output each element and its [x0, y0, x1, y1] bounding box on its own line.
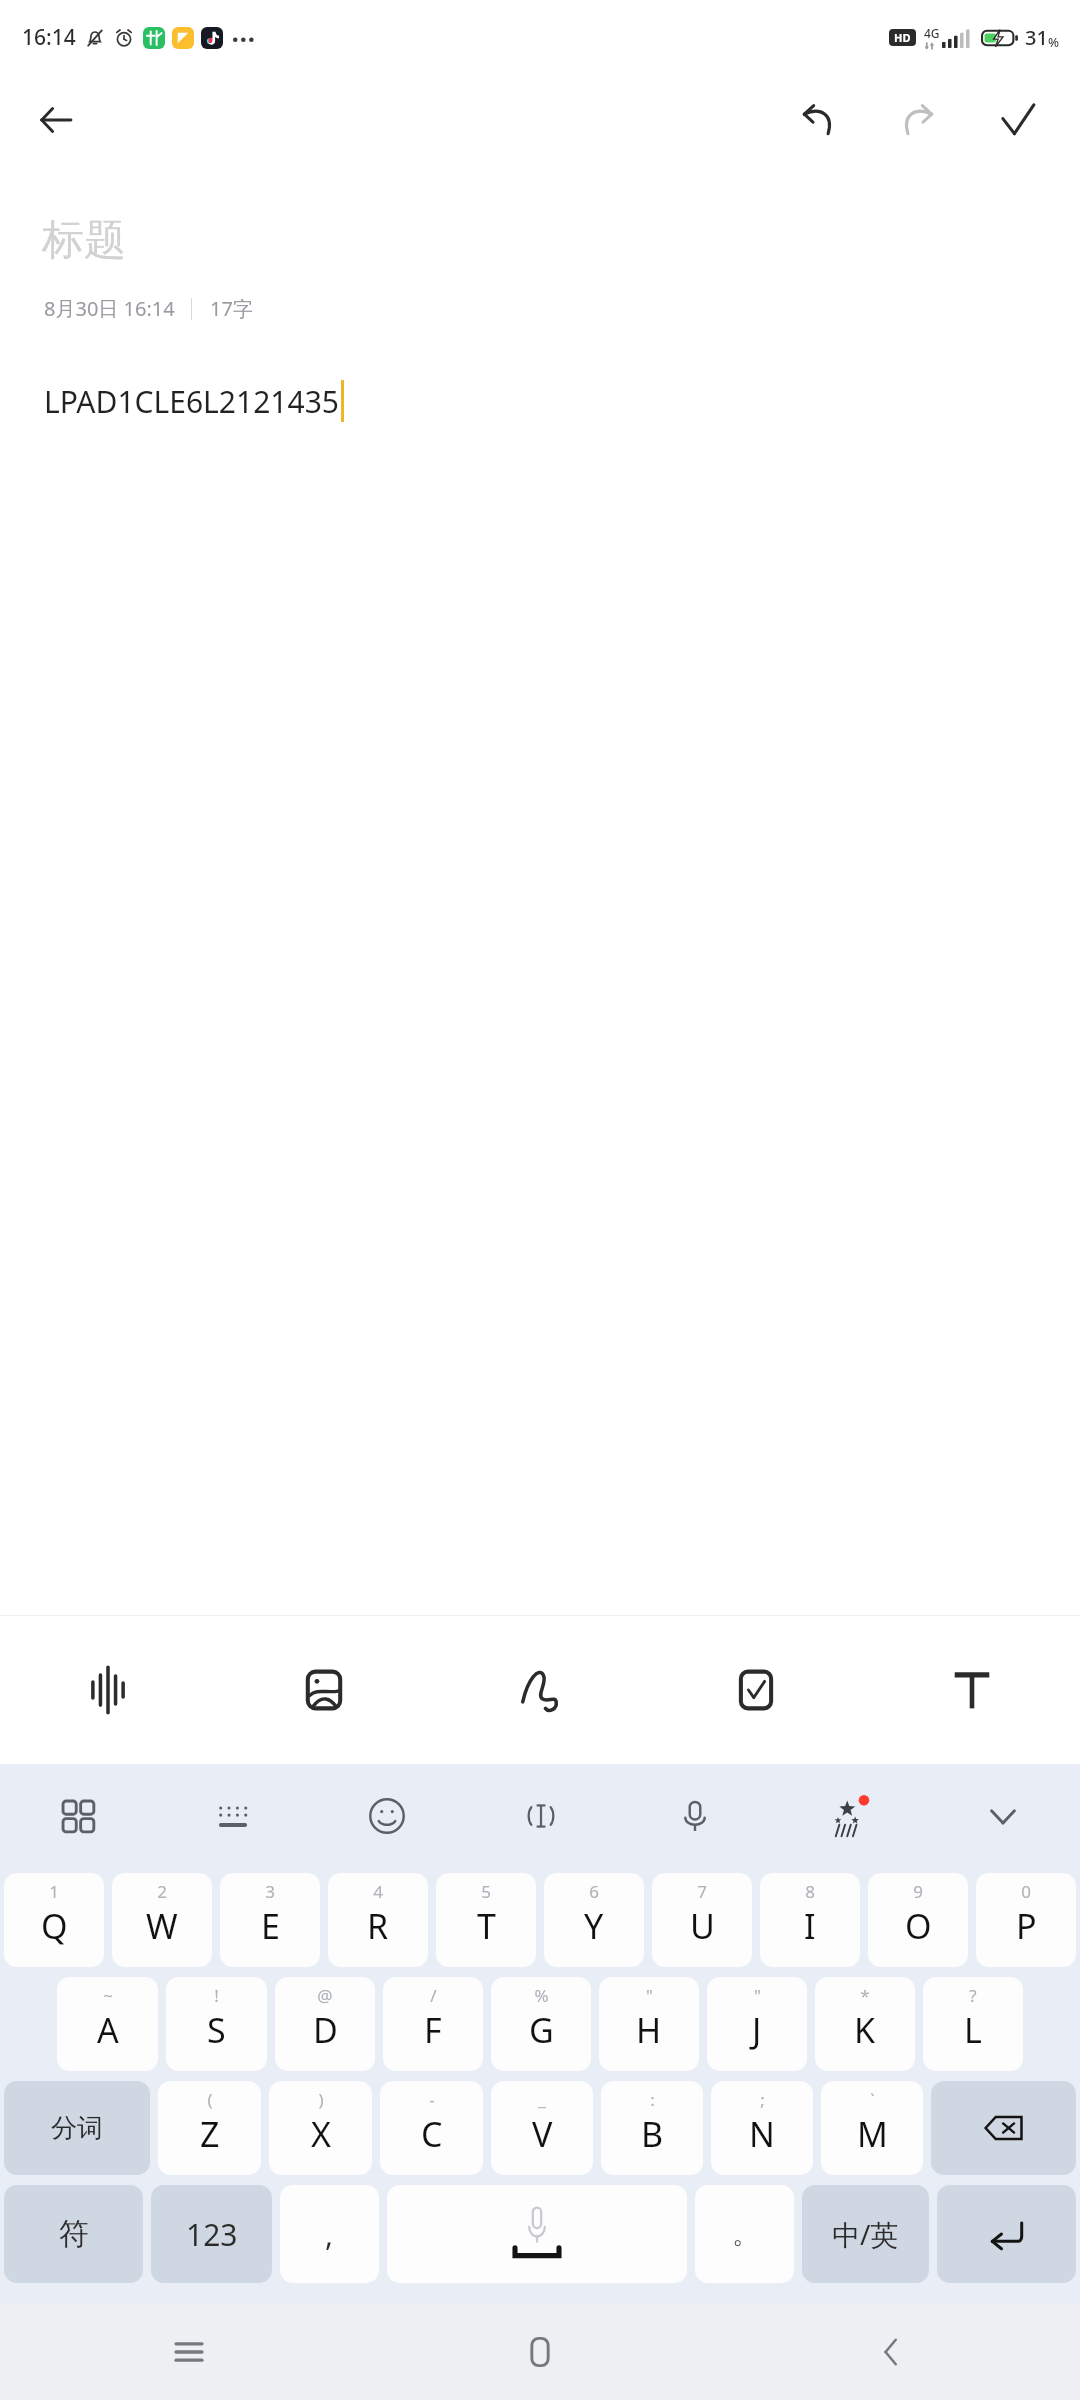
button[interactable]: 分词	[4, 2081, 150, 2175]
staticText: 17字	[210, 295, 253, 322]
staticText: Q	[41, 1903, 68, 1949]
staticText: @	[317, 1984, 333, 2007]
staticText: A	[97, 2007, 119, 2053]
button[interactable]: Apps	[0, 1764, 155, 1868]
staticText: I	[804, 1903, 816, 1949]
button[interactable]: -	[380, 2081, 483, 2175]
staticText: G	[529, 2007, 554, 2053]
button[interactable]: Voice note	[0, 1616, 216, 1764]
button[interactable]: 123	[151, 2185, 272, 2283]
staticText: "	[646, 1984, 653, 2007]
button[interactable]: `	[821, 2081, 923, 2175]
staticText: V	[532, 2111, 553, 2157]
button[interactable]: Backspace	[931, 2081, 1076, 2175]
button[interactable]: Checklist	[648, 1616, 864, 1764]
staticText: HD	[894, 30, 911, 45]
button[interactable]: 符	[4, 2185, 143, 2283]
button[interactable]: Insert image	[216, 1616, 432, 1764]
staticText: 0	[1021, 1880, 1031, 1903]
button[interactable]: 6	[544, 1873, 644, 1967]
button[interactable]: 。	[695, 2185, 794, 2283]
staticText: LPAD1CLE6L2121435	[44, 381, 339, 422]
button[interactable]: Recent apps	[141, 2304, 237, 2400]
button[interactable]: 3	[220, 1873, 320, 1967]
staticText: 123	[186, 2214, 238, 2255]
staticText: 符	[59, 2215, 89, 2253]
staticText: M	[857, 2111, 888, 2157]
staticText: P	[1016, 1903, 1037, 1949]
staticText: %	[1048, 33, 1060, 51]
button[interactable]: Home	[492, 2304, 588, 2400]
button[interactable]: ?	[923, 1977, 1023, 2071]
button[interactable]: *	[815, 1977, 915, 2071]
staticText: W	[146, 1903, 178, 1949]
button[interactable]: 9	[868, 1873, 968, 1967]
button[interactable]: 1	[4, 1873, 104, 1967]
staticText: J	[752, 2007, 762, 2053]
staticText: R	[367, 1903, 389, 1949]
button[interactable]: Redo	[880, 82, 956, 158]
button[interactable]: 4	[328, 1873, 428, 1967]
staticText: *	[860, 1984, 870, 2007]
staticText: 1	[49, 1880, 59, 1903]
button[interactable]: Emoji	[310, 1764, 464, 1868]
button[interactable]: !	[166, 1977, 267, 2071]
button[interactable]: "	[599, 1977, 699, 2071]
button[interactable]: _	[491, 2081, 593, 2175]
staticText: -	[429, 2088, 435, 2111]
staticText: 2	[157, 1880, 167, 1903]
staticText: C	[421, 2111, 443, 2157]
button[interactable]: Done	[980, 82, 1056, 158]
staticText: 6	[589, 1880, 599, 1903]
button[interactable]: 中/英	[802, 2185, 929, 2283]
button[interactable]: (	[158, 2081, 261, 2175]
staticText: 31	[1025, 24, 1048, 51]
button[interactable]: @	[275, 1977, 375, 2071]
button[interactable]: Keyboard layout	[155, 1764, 310, 1868]
button[interactable]: Text format	[864, 1616, 1080, 1764]
staticText: N	[749, 2111, 775, 2157]
staticText: `	[870, 2088, 875, 2111]
staticText: 5	[481, 1880, 491, 1903]
button[interactable]: Back	[843, 2304, 939, 2400]
button[interactable]: ,	[280, 2185, 379, 2283]
button[interactable]: "	[707, 1977, 807, 2071]
button[interactable]: 2	[112, 1873, 212, 1967]
staticText: 3	[265, 1880, 275, 1903]
staticText: 4	[373, 1880, 383, 1903]
button[interactable]: Voice input	[618, 1764, 772, 1868]
button[interactable]: )	[269, 2081, 372, 2175]
staticText: ,	[325, 2214, 334, 2255]
staticText: ~	[103, 1984, 113, 2007]
staticText: ?	[969, 1984, 977, 2007]
button[interactable]: /	[383, 1977, 483, 2071]
staticText: E	[261, 1903, 280, 1949]
button[interactable]: Effects	[772, 1764, 926, 1868]
button[interactable]: Space	[387, 2185, 687, 2283]
staticText: /	[430, 1984, 437, 2007]
button[interactable]: 7	[652, 1873, 752, 1967]
button[interactable]: ;	[711, 2081, 813, 2175]
button[interactable]: Undo	[780, 82, 856, 158]
staticText: T	[477, 1903, 496, 1949]
staticText: X	[311, 2111, 331, 2157]
button[interactable]: Handwriting	[432, 1616, 648, 1764]
staticText: (	[207, 2088, 213, 2111]
button[interactable]: 0	[976, 1873, 1076, 1967]
staticText: K	[854, 2007, 876, 2053]
staticText: O	[905, 1903, 932, 1949]
button[interactable]: 5	[436, 1873, 536, 1967]
staticText: :	[650, 2088, 655, 2111]
button[interactable]: ~	[57, 1977, 158, 2071]
staticText: B	[641, 2111, 664, 2157]
staticText: 标题	[42, 214, 126, 267]
button[interactable]: Text selection	[464, 1764, 618, 1868]
staticText: 。	[732, 2218, 758, 2251]
button[interactable]: Enter	[937, 2185, 1076, 2283]
button[interactable]: Hide keyboard	[926, 1764, 1080, 1868]
staticText: H	[636, 2007, 662, 2053]
button[interactable]: Back	[24, 88, 88, 152]
button[interactable]: %	[491, 1977, 591, 2071]
button[interactable]: 8	[760, 1873, 860, 1967]
button[interactable]: :	[601, 2081, 703, 2175]
